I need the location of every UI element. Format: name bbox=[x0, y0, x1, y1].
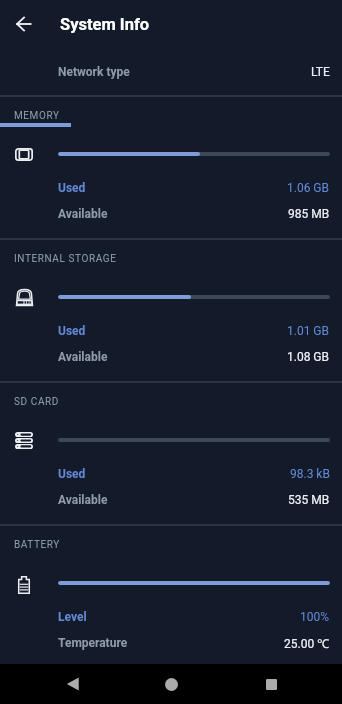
button[interactable]: Back bbox=[52, 664, 92, 704]
button[interactable]: Navigate up bbox=[0, 0, 48, 48]
button[interactable]: Available bbox=[0, 201, 342, 227]
staticText: System Info bbox=[60, 15, 150, 34]
button[interactable]: Available bbox=[0, 344, 342, 370]
staticText: Used bbox=[58, 467, 86, 481]
button[interactable]: Recent apps bbox=[251, 664, 291, 704]
button[interactable]: Level bbox=[0, 604, 342, 630]
staticText: 1.01 GB bbox=[287, 324, 330, 338]
staticText: Available bbox=[58, 350, 108, 364]
staticText: Used bbox=[58, 181, 86, 195]
button[interactable]: Temperature bbox=[0, 630, 342, 656]
button[interactable]: Used bbox=[0, 175, 342, 201]
button[interactable]: Used bbox=[0, 461, 342, 487]
staticText: SD CARD bbox=[14, 396, 59, 408]
staticText: Network type bbox=[58, 65, 130, 79]
button[interactable]: Used bbox=[0, 318, 342, 344]
staticText: 985 MB bbox=[288, 207, 330, 221]
staticText: MEMORY bbox=[14, 110, 60, 122]
staticText: 535 MB bbox=[288, 493, 330, 507]
staticText: BATTERY bbox=[14, 539, 60, 551]
button[interactable]: Available bbox=[0, 487, 342, 513]
staticText: 98.3 kB bbox=[290, 467, 330, 481]
staticText: 100% bbox=[300, 610, 330, 624]
staticText: 1.08 GB bbox=[287, 350, 330, 364]
staticText: 1.06 GB bbox=[287, 181, 330, 195]
staticText: 25.00 ℃ bbox=[284, 635, 330, 651]
staticText: LTE bbox=[311, 65, 330, 79]
staticText: Available bbox=[58, 207, 108, 221]
staticText: Used bbox=[58, 324, 86, 338]
staticText: Temperature bbox=[58, 636, 128, 650]
staticText: INTERNAL STORAGE bbox=[14, 253, 117, 265]
button[interactable]: Network type bbox=[0, 59, 342, 85]
staticText: Level bbox=[58, 610, 87, 624]
button[interactable]: Home bbox=[151, 664, 191, 704]
staticText: Available bbox=[58, 493, 108, 507]
